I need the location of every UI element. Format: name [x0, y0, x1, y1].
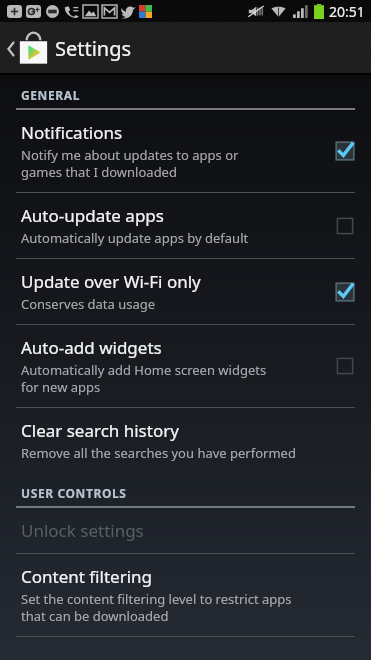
- staticText: Clear search history: [21, 419, 179, 442]
- staticText: Settings: [55, 35, 132, 62]
- staticText: Unlock settings: [21, 519, 144, 542]
- staticText: 20:51: [329, 2, 365, 21]
- button[interactable]: Auto-add widgets: [0, 325, 371, 407]
- staticText: USER CONTROLS: [21, 485, 127, 501]
- staticText: Automatically add Home screen widgets fo…: [21, 361, 267, 396]
- staticText: Notify me about updates to apps or games…: [21, 146, 239, 181]
- staticText: Remove all the searches you have perform…: [21, 444, 296, 462]
- staticText: Update over Wi-Fi only: [21, 270, 201, 293]
- button[interactable]: Update over Wi-Fi only: [0, 259, 371, 324]
- staticText: Auto-update apps: [21, 204, 164, 227]
- staticText: Content filtering: [21, 565, 153, 588]
- button[interactable]: Navigate up: [0, 28, 55, 69]
- button[interactable]: Clear search history: [0, 408, 371, 473]
- staticText: Notifications: [21, 121, 123, 144]
- staticText: Set the content filtering level to restr…: [21, 590, 292, 625]
- staticText: Conserves data usage: [21, 295, 156, 313]
- staticText: Auto-add widgets: [21, 336, 162, 359]
- button[interactable]: Unlock settings: [0, 508, 371, 553]
- staticText: Automatically update apps by default: [21, 229, 249, 247]
- button[interactable]: Auto-update apps: [0, 193, 371, 258]
- button[interactable]: Notifications: [0, 110, 371, 192]
- button[interactable]: Content filtering: [0, 554, 371, 636]
- staticText: GENERAL: [21, 87, 80, 103]
